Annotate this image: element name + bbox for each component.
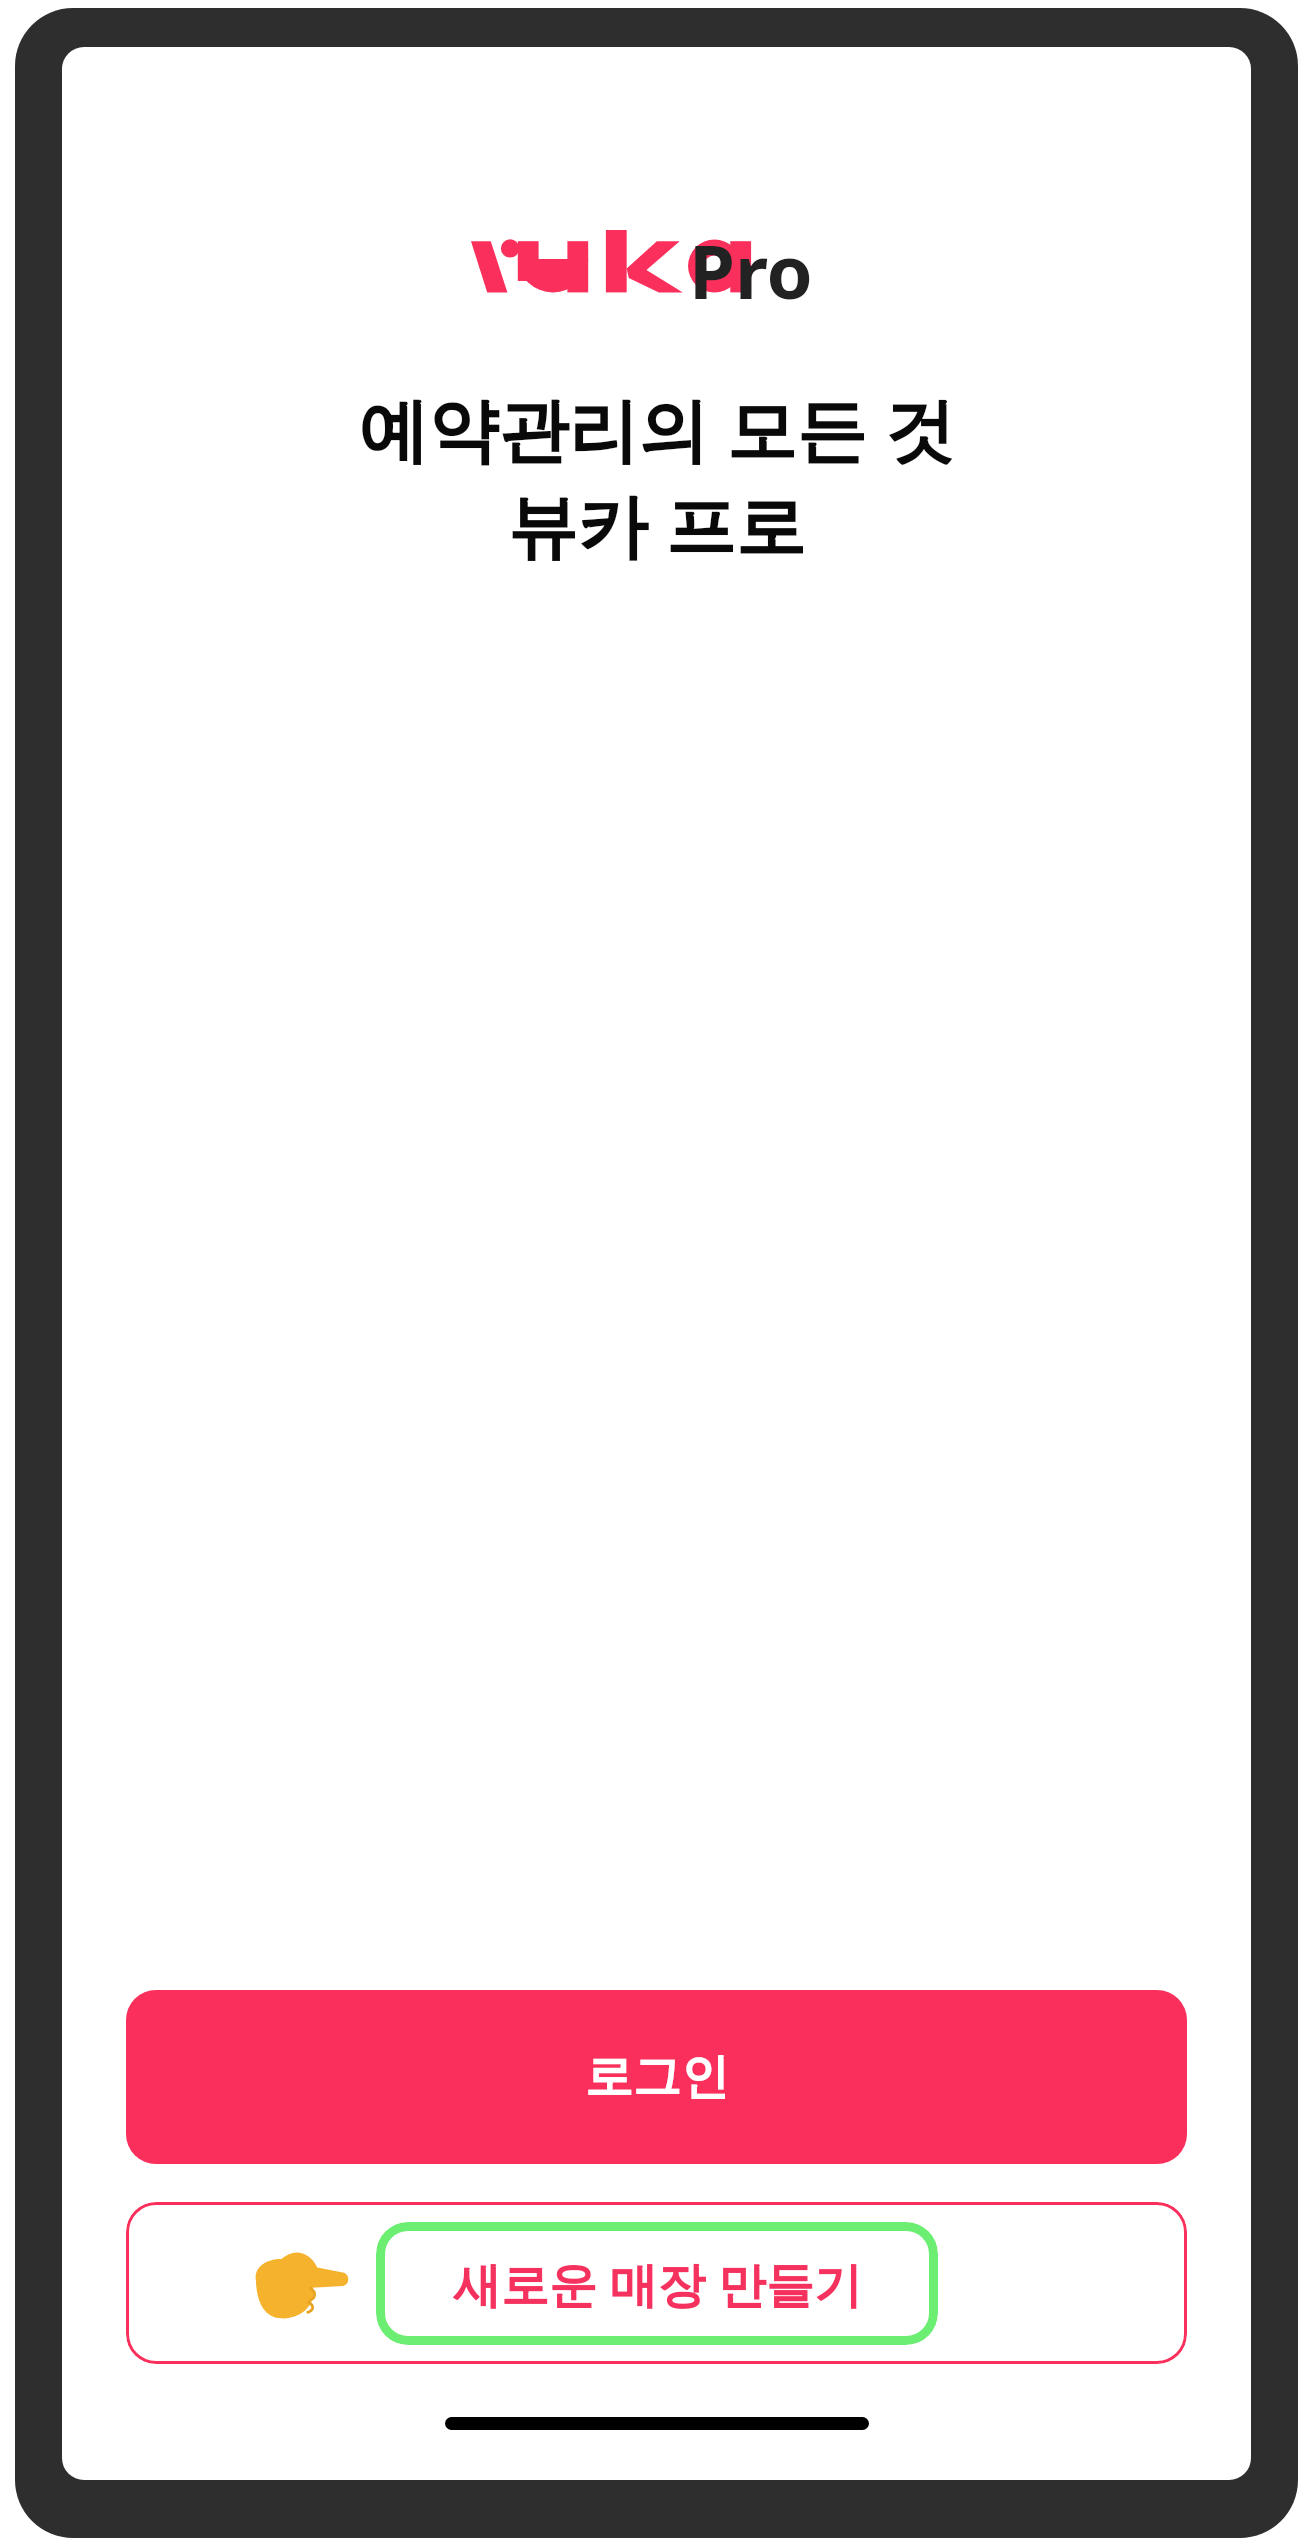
button[interactable]: Pointing right: [126, 2202, 1187, 2364]
button[interactable]: 로그인: [126, 1990, 1187, 2164]
staticText: 로그인: [585, 2047, 729, 2107]
staticText: 예약관리의 모든 것: [358, 380, 955, 476]
other: Pointing right: [252, 2244, 348, 2322]
staticText: 새로운 매장 만들기: [453, 2251, 862, 2317]
staticText: 뷰카 프로: [507, 476, 806, 572]
staticText: Pro: [689, 220, 813, 300]
